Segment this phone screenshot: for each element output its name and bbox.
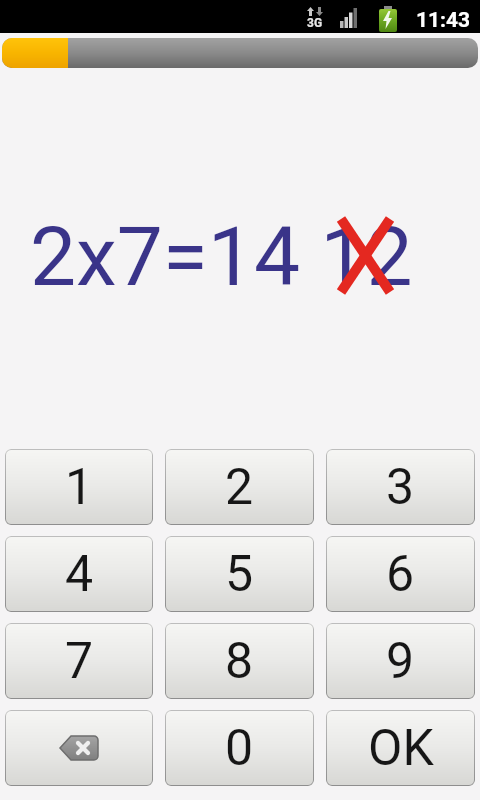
- staticText: 6: [386, 545, 415, 604]
- staticText: 3: [386, 458, 415, 517]
- button[interactable]: 9: [326, 623, 475, 699]
- button[interactable]: 6: [326, 536, 475, 612]
- staticText: 3G: [307, 16, 323, 30]
- staticText: 0: [225, 719, 254, 778]
- staticText: 2: [225, 458, 254, 517]
- staticText: 5: [225, 545, 254, 604]
- button[interactable]: 4: [5, 536, 153, 612]
- button[interactable]: 3: [326, 449, 475, 525]
- staticText: 4: [65, 545, 94, 604]
- button[interactable]: 1: [5, 449, 153, 525]
- staticText: 2x7=14 12: [30, 209, 413, 305]
- button[interactable]: 2: [165, 449, 314, 525]
- button[interactable]: 8: [165, 623, 314, 699]
- button[interactable]: OK: [326, 710, 475, 786]
- button[interactable]: 5: [165, 536, 314, 612]
- staticText: OK: [368, 719, 434, 778]
- staticText: 7: [65, 632, 94, 691]
- button[interactable]: 7: [5, 623, 153, 699]
- staticText: 1: [65, 458, 94, 517]
- button[interactable]: [5, 710, 153, 786]
- staticText: 9: [386, 632, 415, 691]
- staticText: 8: [225, 632, 254, 691]
- button[interactable]: 0: [165, 710, 314, 786]
- staticText: 11:43: [416, 8, 471, 33]
